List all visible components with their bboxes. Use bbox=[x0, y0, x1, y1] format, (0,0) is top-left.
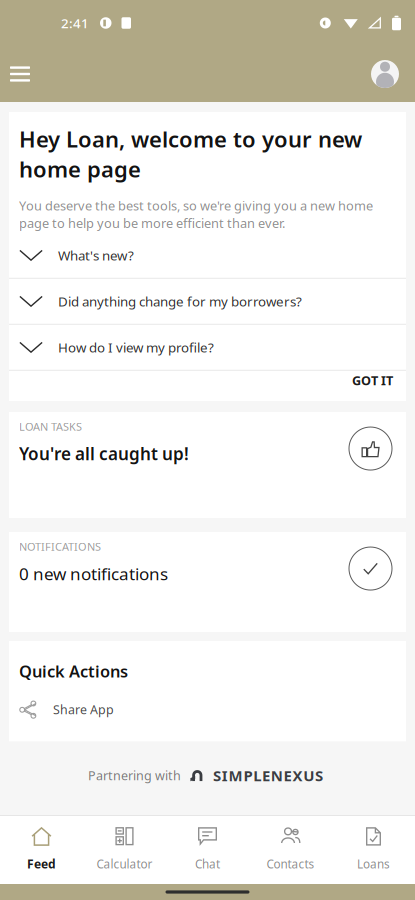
staticText: You're all caught up! bbox=[19, 442, 189, 465]
staticText: How do I view my profile? bbox=[58, 338, 214, 356]
staticText: 0 new notifications bbox=[19, 562, 168, 585]
staticText: Quick Actions bbox=[19, 660, 128, 682]
button[interactable]: Chat bbox=[166, 816, 249, 884]
staticText: 2:41 bbox=[61, 14, 89, 32]
button[interactable]: Calculator bbox=[83, 816, 166, 884]
staticText: Did anything change for my borrowers? bbox=[58, 292, 302, 310]
staticText: You deserve the best tools, so we're giv… bbox=[19, 197, 373, 232]
staticText: GOT IT bbox=[352, 372, 393, 389]
button[interactable]: Feed bbox=[0, 816, 83, 884]
button[interactable]: How do I view my profile? bbox=[9, 325, 406, 370]
button[interactable]: GOT IT bbox=[339, 371, 406, 401]
button[interactable]: Did anything change for my borrowers? bbox=[9, 279, 406, 324]
button[interactable]: Contacts bbox=[249, 816, 332, 884]
staticText: Calculator bbox=[96, 856, 152, 872]
button[interactable]: Profile bbox=[355, 48, 415, 100]
staticText: What's new? bbox=[58, 246, 134, 264]
staticText: Chat bbox=[195, 856, 220, 872]
staticText: Share App bbox=[53, 701, 114, 718]
button[interactable]: Menu bbox=[0, 51, 40, 97]
staticText: Feed bbox=[27, 856, 56, 872]
staticText: NOTIFICATIONS bbox=[19, 539, 101, 554]
staticText: Contacts bbox=[266, 856, 314, 872]
staticText: Partnering with bbox=[88, 767, 181, 784]
button[interactable]: What's new? bbox=[9, 233, 406, 278]
button[interactable]: Loans bbox=[332, 816, 415, 884]
staticText: LOAN TASKS bbox=[19, 419, 82, 434]
staticText: SIMPLENEXUS bbox=[213, 765, 323, 785]
staticText: Hey Loan, welcome to your new home page bbox=[19, 124, 362, 184]
staticText: Loans bbox=[357, 856, 390, 872]
button[interactable]: Share App bbox=[9, 695, 406, 723]
